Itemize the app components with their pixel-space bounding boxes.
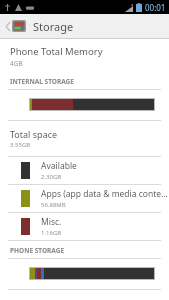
- staticText: Phone Total Memory: [10, 45, 103, 58]
- staticText: 1.16GB: [41, 229, 62, 237]
- staticText: Available: [41, 160, 77, 172]
- button[interactable]: [30, 99, 154, 110]
- staticText: 3.55GB: [10, 141, 31, 149]
- button[interactable]: Storage: [0, 14, 169, 38]
- button[interactable]: Misc.: [0, 213, 169, 240]
- staticText: 56.88MB: [41, 201, 66, 209]
- button[interactable]: Available: [0, 157, 169, 184]
- staticText: INTERNAL STORAGE: [10, 77, 74, 86]
- button[interactable]: Apps (app data & media content): [0, 185, 169, 212]
- staticText: Apps (app data & media content): [41, 188, 169, 200]
- staticText: PHONE STORAGE: [10, 246, 65, 255]
- staticText: Storage: [33, 19, 74, 34]
- staticText: 00:01: [145, 2, 166, 13]
- staticText: 4GB: [10, 59, 23, 68]
- staticText: Total space: [10, 128, 58, 140]
- staticText: 2.30GB: [41, 173, 62, 181]
- staticText: Misc.: [41, 216, 62, 228]
- button[interactable]: [30, 268, 154, 279]
